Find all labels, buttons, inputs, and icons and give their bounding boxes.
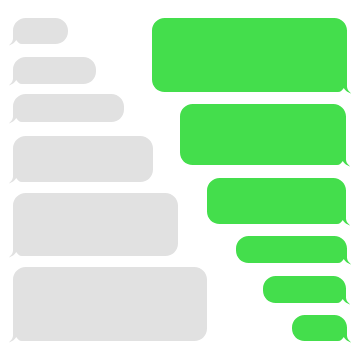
button[interactable]: Sent message 5: [263, 276, 346, 303]
button[interactable]: Sent message 6: [292, 315, 347, 341]
button[interactable]: Received message 1: [13, 18, 68, 44]
button[interactable]: Received message 3: [13, 94, 124, 122]
button[interactable]: Sent message 4: [236, 236, 347, 263]
button[interactable]: Received message 2: [13, 57, 96, 84]
button[interactable]: Sent message 1: [152, 18, 347, 92]
button[interactable]: Sent message 2: [180, 104, 346, 165]
button[interactable]: Received message 5: [13, 193, 178, 256]
button[interactable]: Sent message 3: [207, 178, 346, 224]
button[interactable]: Received message 4: [13, 136, 153, 182]
